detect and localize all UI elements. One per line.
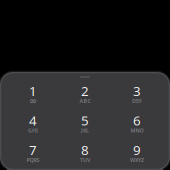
button[interactable]: 1	[7, 85, 59, 114]
staticText: GHI	[28, 127, 38, 134]
staticText: 3	[133, 82, 141, 100]
staticText: WXYZ	[130, 156, 144, 164]
staticText: 5	[81, 111, 89, 129]
button[interactable]: 8	[59, 144, 111, 170]
staticText: PQRS	[26, 156, 39, 164]
staticText: 2	[81, 82, 89, 100]
staticText: ∞	[29, 95, 37, 106]
button[interactable]: 3	[111, 85, 163, 114]
staticText: JKL	[81, 127, 89, 134]
button[interactable]: 2	[59, 85, 111, 114]
staticText: 4	[29, 111, 37, 129]
staticText: DEF	[132, 97, 142, 105]
staticText: 8	[81, 141, 89, 159]
button[interactable]: 5	[59, 114, 111, 144]
staticText: 6	[133, 111, 141, 129]
staticText: ABC	[79, 97, 90, 105]
button[interactable]: 6	[111, 114, 163, 144]
staticText: 9	[133, 141, 141, 159]
button[interactable]: 9	[111, 144, 163, 170]
staticText: TUV	[80, 156, 90, 164]
button[interactable]: 7	[7, 144, 59, 170]
staticText: 1	[29, 82, 37, 100]
staticText: 7	[29, 141, 37, 159]
button[interactable]: 4	[7, 114, 59, 144]
staticText: MNO	[130, 127, 143, 134]
